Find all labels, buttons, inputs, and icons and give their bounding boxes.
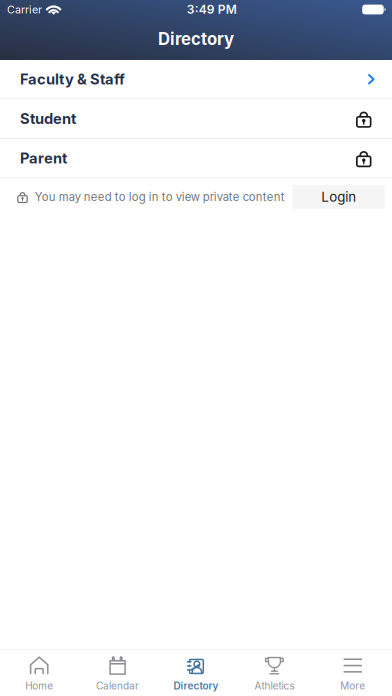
staticText: Athletics bbox=[254, 680, 294, 692]
staticText: Calendar bbox=[96, 680, 139, 692]
button[interactable]: Student bbox=[0, 99, 392, 139]
staticText: You may need to log in to view private c… bbox=[35, 190, 285, 204]
button[interactable]: Calendar bbox=[78, 648, 157, 696]
staticText: Faculty & Staff bbox=[20, 70, 125, 88]
staticText: Parent bbox=[20, 149, 67, 167]
staticText: Directory bbox=[173, 680, 218, 692]
staticText: Home bbox=[25, 680, 53, 692]
staticText: 3:49 PM bbox=[187, 2, 237, 17]
staticText: Student bbox=[20, 110, 76, 128]
button[interactable]: Athletics bbox=[235, 648, 314, 696]
staticText: Directory bbox=[158, 29, 234, 49]
button[interactable]: Directory bbox=[157, 648, 235, 696]
button[interactable]: Login bbox=[293, 185, 385, 209]
button[interactable]: Parent bbox=[0, 139, 392, 178]
staticText: Login bbox=[321, 189, 356, 205]
button[interactable]: Home bbox=[0, 648, 78, 696]
button[interactable]: More bbox=[314, 648, 392, 696]
staticText: Carrier bbox=[7, 3, 42, 16]
button[interactable]: Faculty & Staff bbox=[0, 60, 392, 99]
staticText: More bbox=[340, 680, 365, 692]
